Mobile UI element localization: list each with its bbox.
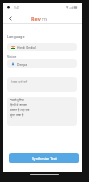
staticText: Deepa [17,62,28,66]
staticText: नमस्ते दुनिया हिन्दी में आपका स्वागत है।… [10,98,30,117]
staticText: टेक्स्ट दर्ज करें [11,79,28,83]
button[interactable]: Synthesize Text [9,153,79,163]
button[interactable]: टेक्स्ट दर्ज करें [7,77,77,92]
staticText: TTS [42,18,48,22]
staticText: Voice [7,54,17,59]
button[interactable]: Select voice [7,59,77,68]
staticText: 9:41 [14,6,20,10]
button[interactable]: Select language [7,43,77,51]
button[interactable]: Back [5,13,16,24]
staticText: Hindi (India) [17,45,36,49]
staticText: Language [7,34,25,39]
staticText: Rev [31,15,41,22]
staticText: Synthesize Text [32,156,57,161]
